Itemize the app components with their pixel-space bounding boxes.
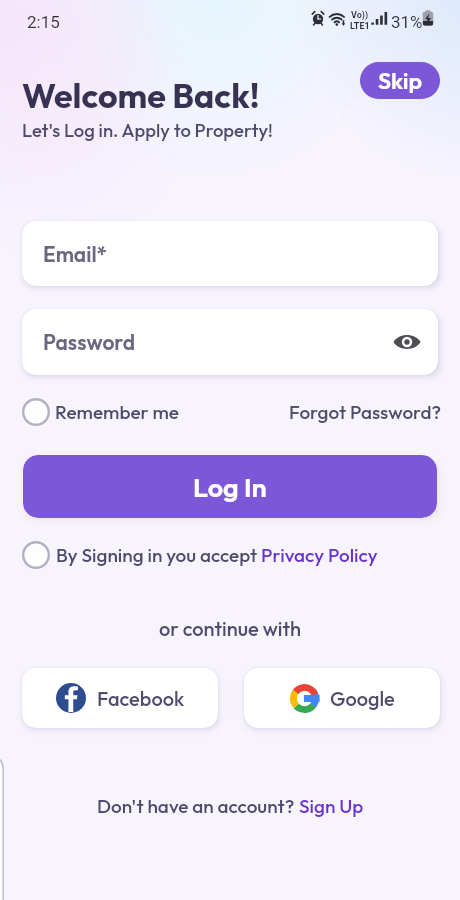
staticText: Facebook: [97, 686, 185, 711]
button[interactable]: Sign Up: [299, 794, 364, 818]
button[interactable]: Forgot Password?: [289, 395, 442, 429]
button[interactable]: Password: [22, 309, 438, 375]
button[interactable]: Log In: [23, 455, 437, 518]
button[interactable]: Accept terms and conditions: [22, 541, 50, 569]
other: Show password: [392, 327, 422, 357]
staticText: Let's Log in. Apply to Property!: [22, 118, 273, 141]
button[interactable]: Privacy Policy: [261, 543, 378, 567]
button[interactable]: Facebook: [22, 668, 218, 728]
staticText: 31%: [391, 12, 423, 32]
staticText: or continue with: [0, 616, 460, 641]
staticText: Remember me: [55, 400, 179, 424]
staticText: Vo)): [351, 10, 369, 21]
button[interactable]: Google: [244, 668, 440, 728]
button[interactable]: Skip: [360, 62, 440, 99]
button[interactable]: Remember me: [22, 395, 179, 429]
staticText: By Signing in you accept: [56, 543, 261, 567]
staticText: Don't have an account?: [97, 794, 299, 818]
staticText: LTE1: [350, 21, 370, 32]
staticText: 2:15: [27, 12, 60, 32]
staticText: Sign Up: [299, 794, 364, 818]
staticText: Forgot Password?: [289, 400, 442, 424]
staticText: Skip: [378, 66, 423, 95]
button[interactable]: Email*: [22, 221, 438, 286]
staticText: Password: [43, 329, 136, 355]
staticText: Privacy Policy: [261, 543, 378, 567]
staticText: Welcome Back!: [22, 74, 260, 117]
staticText: Google: [330, 686, 395, 711]
staticText: Email*: [43, 241, 107, 267]
staticText: Log In: [193, 470, 267, 504]
